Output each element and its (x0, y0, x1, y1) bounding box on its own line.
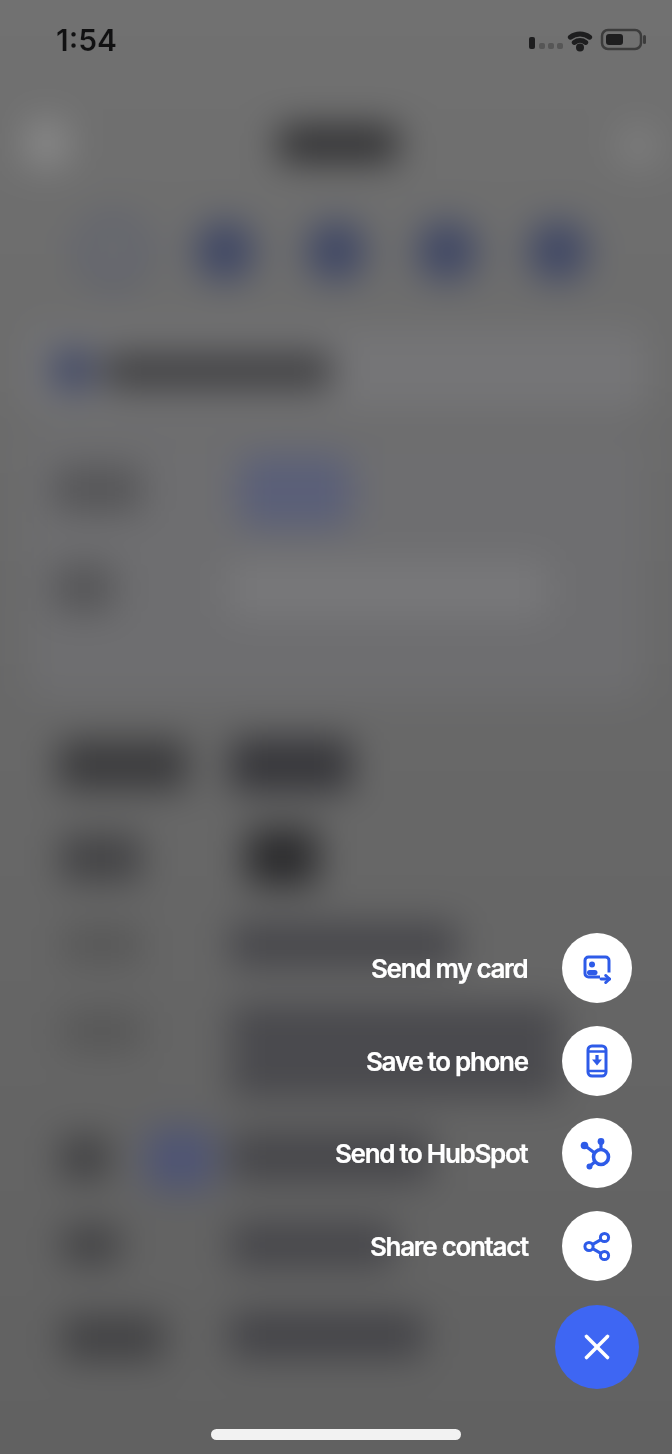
button[interactable]: Send to HubSpot (335, 1118, 632, 1188)
staticText: Save to phone (366, 1046, 528, 1077)
staticText: Send my card (371, 953, 528, 984)
staticText: Send to HubSpot (335, 1138, 528, 1169)
button[interactable]: Send my card (371, 933, 632, 1003)
button[interactable]: Share contact (370, 1211, 632, 1281)
button[interactable] (555, 1305, 639, 1389)
staticText: 1:54 (56, 22, 118, 58)
button[interactable]: Save to phone (366, 1026, 632, 1096)
staticText: Share contact (370, 1231, 528, 1262)
